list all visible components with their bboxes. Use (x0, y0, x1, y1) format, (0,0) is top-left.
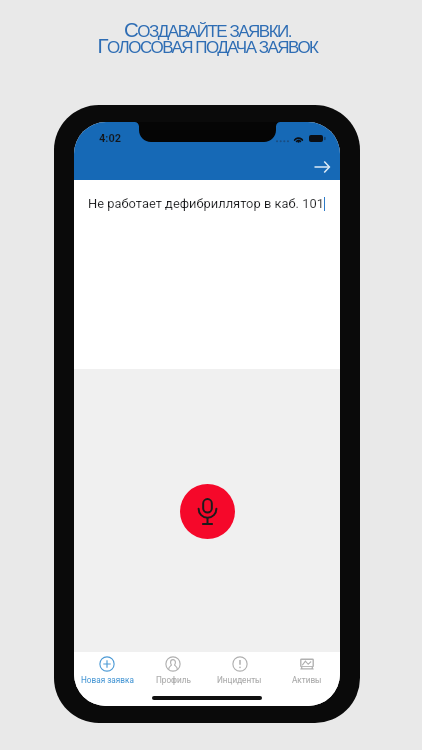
staticText: Новая заявка (81, 675, 134, 685)
button[interactable]: Инциденты (206, 656, 273, 692)
staticText: 4:02 (99, 132, 122, 145)
staticText: ГОЛОСОВАЯ ПОДАЧА ЗАЯВОК (97, 34, 318, 57)
button[interactable]: Submit request (308, 153, 336, 181)
button[interactable]: Новая заявка (74, 656, 140, 692)
staticText: Профиль (156, 675, 191, 685)
button[interactable]: Профиль (140, 656, 206, 692)
staticText: Инциденты (217, 675, 262, 685)
staticText: Не работает дефибриллятор в каб. 101 (88, 196, 324, 211)
button[interactable]: Активы (273, 656, 340, 692)
staticText: Активы (292, 675, 322, 685)
button[interactable]: Record voice request (180, 484, 235, 539)
staticText: СОЗДАВАЙТЕ ЗАЯВКИ. (124, 18, 291, 41)
